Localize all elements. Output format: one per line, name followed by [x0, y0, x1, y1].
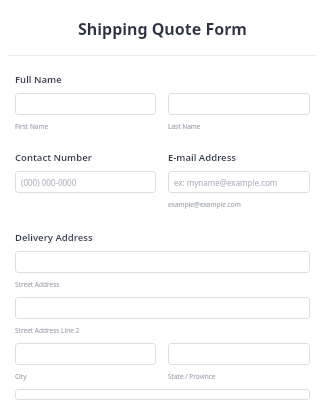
staticText: State / Province: [168, 372, 216, 381]
staticText: Contact Number: [15, 151, 92, 164]
staticText: Shipping Quote Form: [0, 18, 325, 40]
staticText: Last Name: [168, 122, 201, 131]
button[interactable]: [15, 297, 310, 319]
staticText: Street Address: [15, 280, 60, 289]
button[interactable]: [168, 343, 310, 365]
staticText: Delivery Address: [15, 231, 93, 244]
staticText: E-mail Address: [168, 151, 237, 164]
staticText: First Name: [15, 122, 49, 131]
button[interactable]: [15, 389, 310, 400]
staticText: Street Address Line 2: [15, 326, 80, 335]
staticText: (000) 000-0000: [21, 177, 77, 188]
staticText: ex: myname@example.com: [174, 177, 278, 188]
staticText: Full Name: [15, 73, 62, 86]
button[interactable]: ex: myname@example.com: [168, 171, 310, 193]
button[interactable]: [168, 93, 310, 115]
staticText: example@example.com: [168, 200, 241, 209]
button[interactable]: (000) 000-0000: [15, 171, 156, 193]
button[interactable]: [15, 251, 310, 273]
staticText: City: [15, 372, 27, 381]
button[interactable]: [15, 93, 156, 115]
button[interactable]: [15, 343, 156, 365]
